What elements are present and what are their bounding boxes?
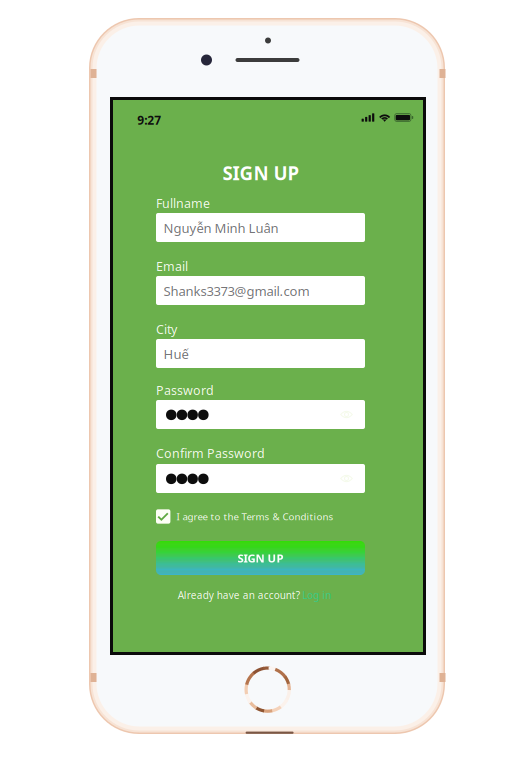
staticText: Fullname (156, 195, 210, 211)
staticText: Password (156, 382, 214, 398)
button[interactable]: I agree to the Terms & Conditions (156, 509, 333, 524)
button[interactable] (156, 464, 365, 493)
staticText: Shanks3373@gmail.com (163, 282, 309, 300)
staticText: City (156, 321, 177, 337)
staticText: 9:27 (137, 112, 161, 128)
staticText: I agree to the Terms & Conditions (176, 510, 333, 523)
button[interactable]: Already have an account? (150, 588, 359, 602)
button[interactable]: Shanks3373@gmail.com (156, 276, 365, 305)
button[interactable] (156, 400, 365, 429)
staticText: Log in (302, 588, 331, 602)
staticText: SIGN UP (222, 161, 299, 185)
button[interactable]: Huế (156, 339, 365, 368)
staticText: Already have an account? (178, 588, 300, 602)
button[interactable]: SIGN UP (156, 541, 365, 575)
staticText: Huế (163, 345, 188, 363)
button[interactable]: Nguyễn Minh Luân (156, 213, 365, 242)
staticText: Confirm Password (156, 445, 265, 461)
staticText: Email (156, 258, 188, 274)
staticText: SIGN UP (237, 550, 283, 565)
staticText: Nguyễn Minh Luân (163, 219, 278, 237)
